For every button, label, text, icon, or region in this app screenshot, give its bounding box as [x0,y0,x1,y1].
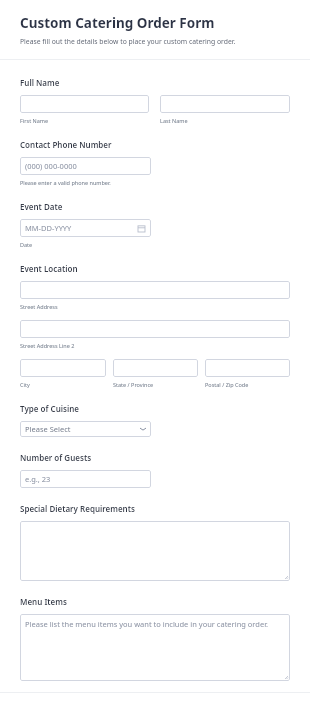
staticText: Street Address Line 2 [20,342,75,349]
staticText: Special Dietary Requirements [20,503,135,514]
staticText: Date [20,241,33,248]
staticText: Please enter a valid phone number. [20,179,111,186]
staticText: Please Select [25,424,71,434]
staticText: Last Name [160,117,188,124]
staticText: State / Province [113,381,154,388]
staticText: Street Address [20,303,58,310]
button[interactable] [205,359,290,377]
button[interactable]: Please list the menu items you want to i… [20,614,290,681]
staticText: Please fill out the details below to pla… [20,37,236,46]
button[interactable]: Pick date [137,224,146,233]
staticText: Postal / Zip Code [205,381,249,388]
button[interactable]: MM-DD-YYYY [20,219,151,237]
staticText: Custom Catering Order Form [20,14,215,32]
button[interactable] [160,95,290,113]
button[interactable] [20,521,290,581]
button[interactable]: Please Select [20,421,151,437]
staticText: Contact Phone Number [20,139,112,150]
staticText: MM-DD-YYYY [25,223,72,233]
staticText: Type of Cuisine [20,403,79,414]
staticText: City [20,381,30,388]
button[interactable] [20,320,290,338]
staticText: Event Location [20,263,78,274]
button[interactable] [20,359,106,377]
button[interactable] [20,95,149,113]
staticText: Number of Guests [20,452,92,463]
staticText: Menu Items [20,596,67,607]
button[interactable] [20,281,290,299]
staticText: Please list the menu items you want to i… [25,619,269,629]
staticText: Event Date [20,201,63,212]
staticText: Full Name [20,77,60,88]
staticText: First Name [20,117,49,124]
staticText: e.g., 23 [25,474,51,484]
button[interactable]: (000) 000-0000 [20,157,151,175]
staticText: (000) 000-0000 [25,161,77,171]
button[interactable]: e.g., 23 [20,470,151,488]
button[interactable] [113,359,198,377]
